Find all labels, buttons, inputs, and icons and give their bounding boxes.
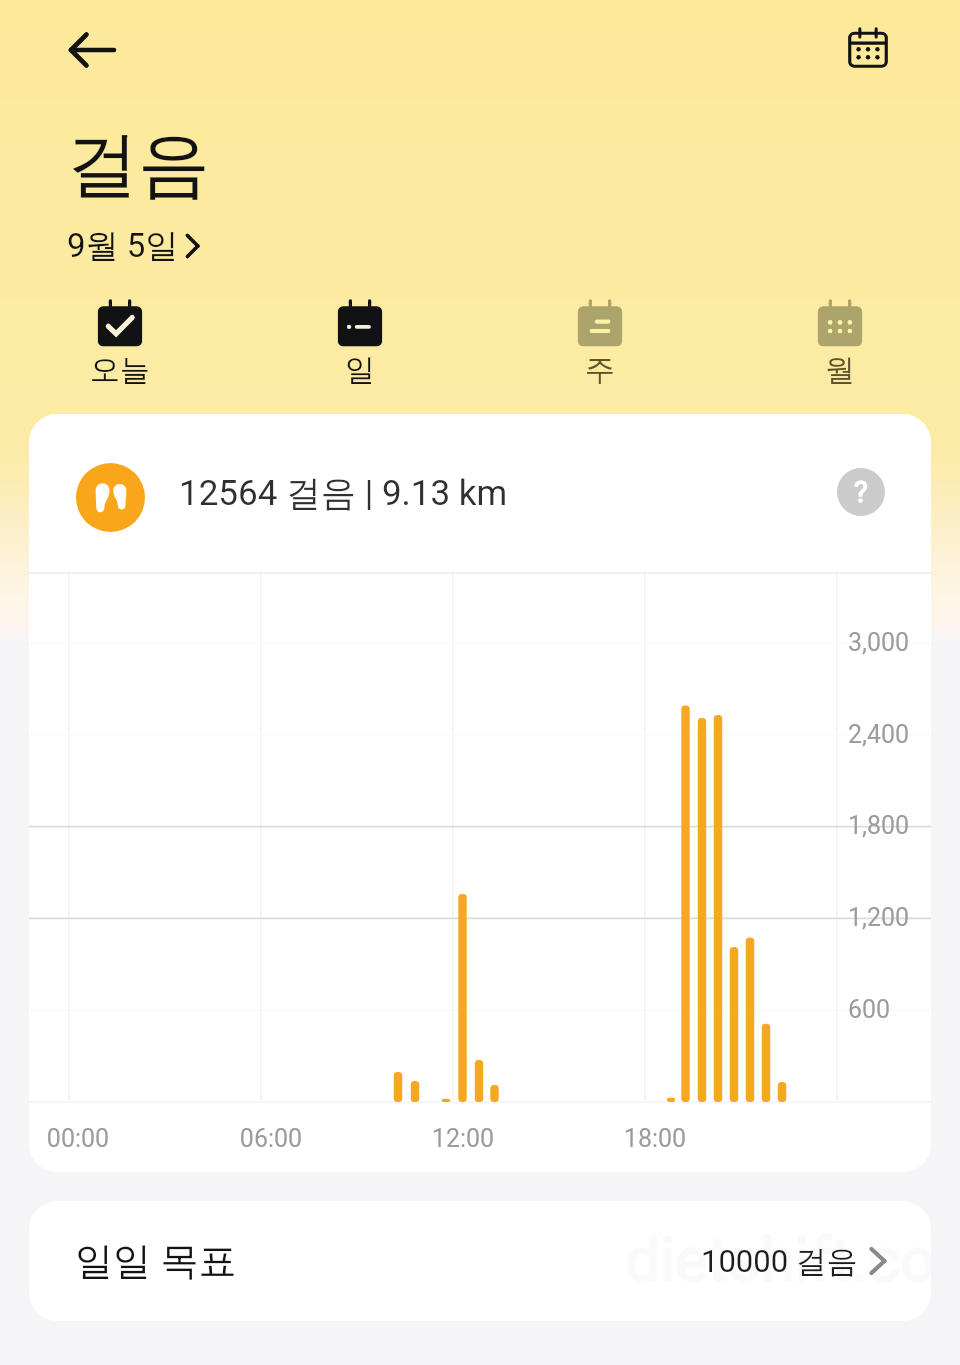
staticText: dietshift.com: [625, 1223, 931, 1296]
button[interactable]: dietshift.com: [29, 1201, 931, 1321]
staticText: 18:00: [595, 1124, 715, 1153]
staticText: 걸음: [66, 120, 210, 211]
staticText: 주: [585, 351, 615, 389]
button[interactable]: 오늘: [0, 298, 240, 389]
button[interactable]: 주: [480, 298, 720, 389]
staticText: 2,400: [848, 720, 910, 749]
staticText: 00:00: [29, 1124, 138, 1153]
staticText: 9월 5일: [67, 225, 179, 267]
staticText: 오늘: [90, 351, 150, 389]
staticText: 12:00: [403, 1124, 523, 1153]
staticText: 1,200: [848, 903, 910, 932]
staticText: 1,800: [848, 811, 910, 840]
staticText: 600: [848, 995, 891, 1024]
button[interactable]: 월: [720, 298, 960, 389]
staticText: 3,000: [848, 628, 910, 657]
staticText: 일: [345, 351, 375, 389]
staticText: 06:00: [211, 1124, 331, 1153]
staticText: 12564 걸음 | 9.13 km: [179, 471, 508, 515]
staticText: 10000 걸음: [701, 1242, 858, 1281]
button[interactable]: 9월 5일: [67, 225, 208, 267]
staticText: ?: [854, 475, 868, 509]
staticText: 월: [825, 351, 855, 389]
button[interactable]: Back: [69, 26, 117, 74]
button[interactable]: Help: [837, 468, 885, 516]
staticText: 일일 목표: [75, 1237, 237, 1285]
button[interactable]: Open calendar: [846, 26, 890, 70]
button[interactable]: 일: [240, 298, 480, 389]
